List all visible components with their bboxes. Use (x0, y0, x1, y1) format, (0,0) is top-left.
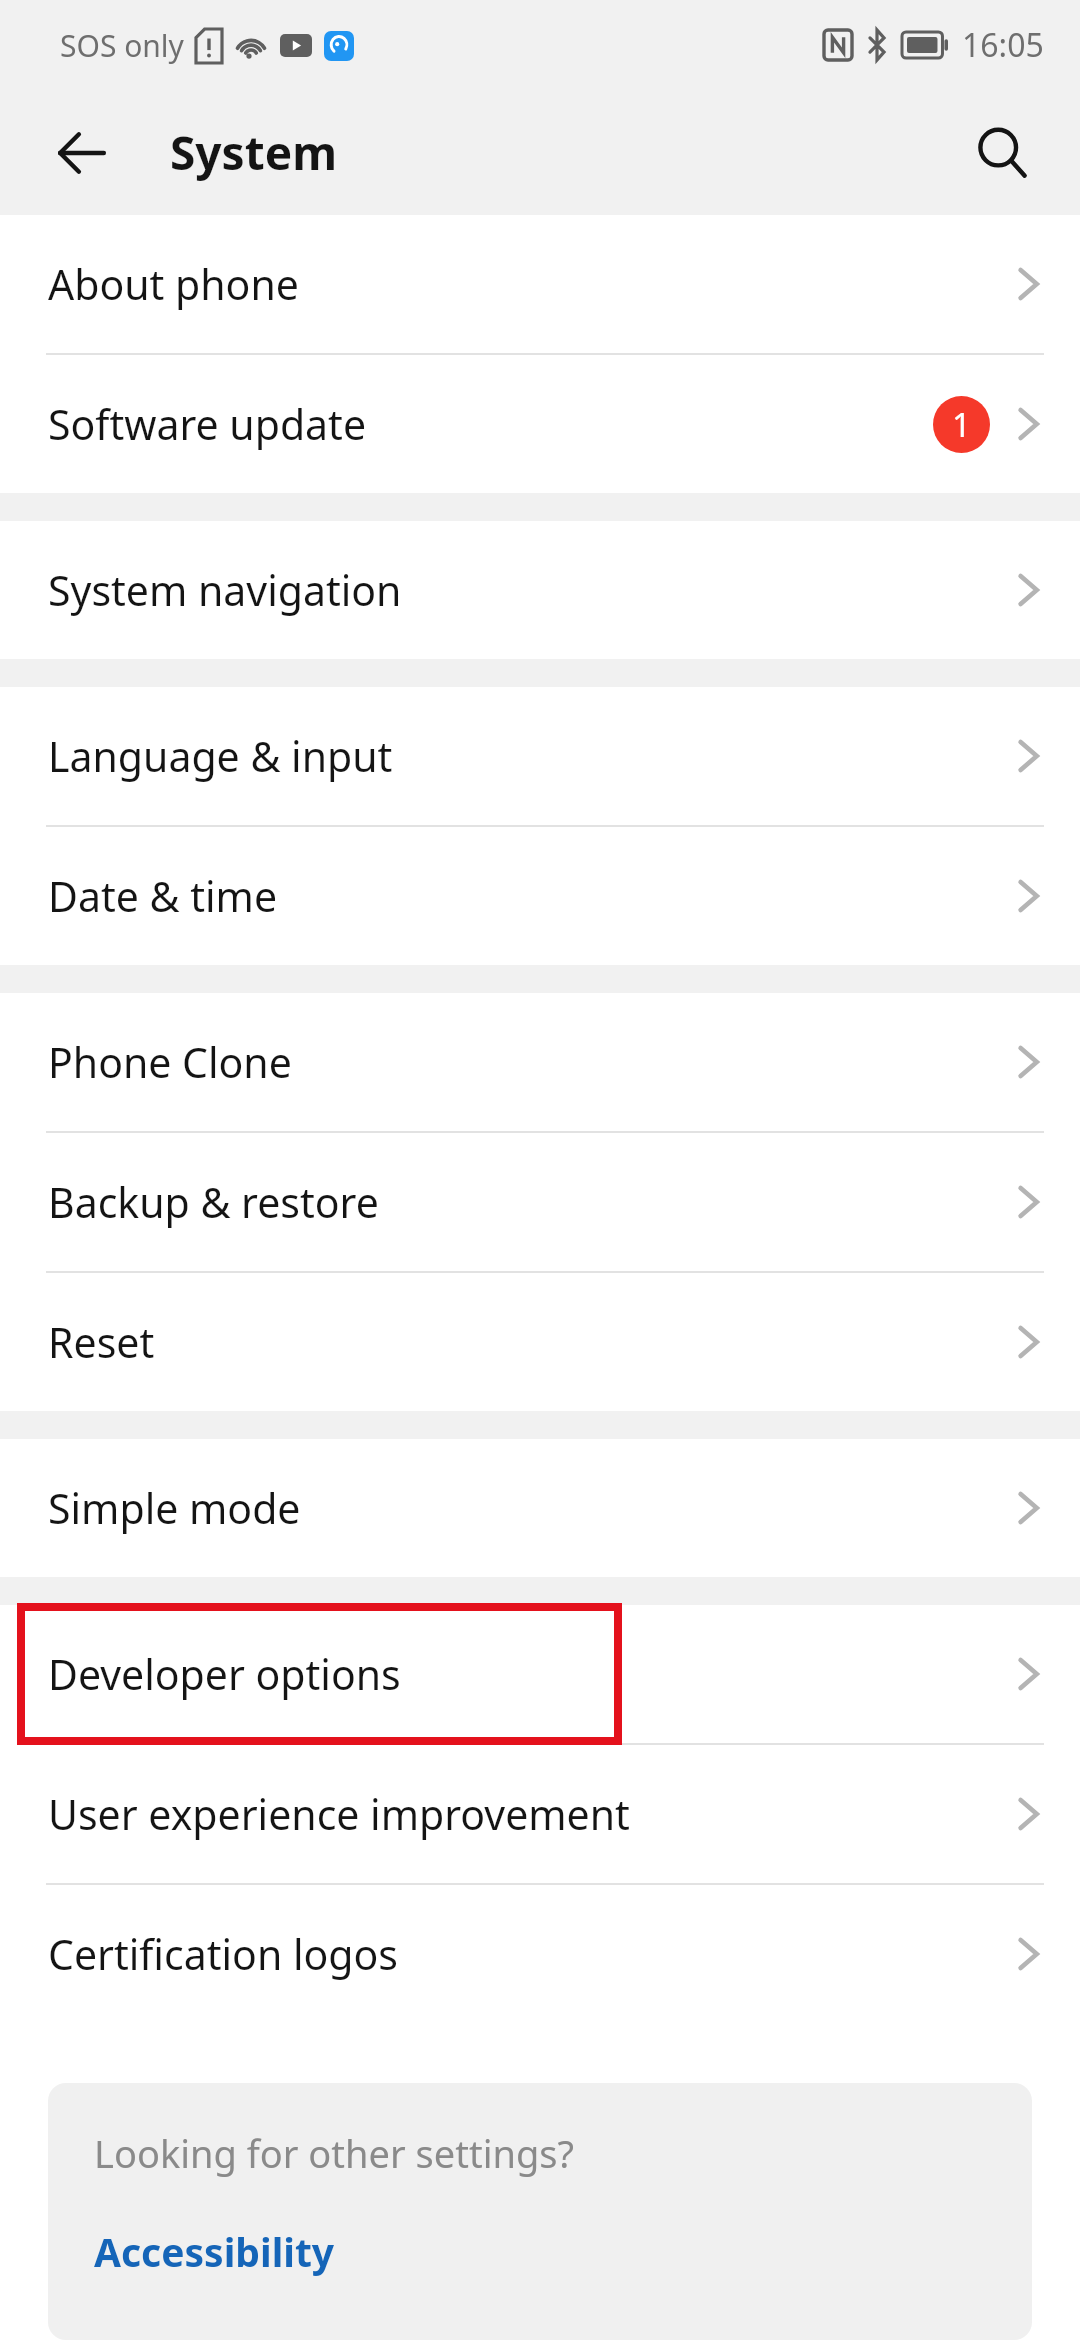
button[interactable]: Software update (0, 355, 1080, 493)
button[interactable]: Reset (0, 1273, 1080, 1411)
staticText: 16:05 (962, 23, 1044, 67)
staticText: About phone (48, 256, 1014, 312)
button[interactable]: User experience improvement (0, 1745, 1080, 1883)
button[interactable]: Language & input (0, 687, 1080, 825)
staticText: System navigation (48, 562, 1014, 618)
button[interactable]: Accessibility (48, 2221, 1032, 2282)
button[interactable]: Back (36, 107, 128, 199)
staticText: Backup & restore (48, 1174, 1014, 1230)
staticText: Software update (48, 396, 933, 452)
staticText: User experience improvement (48, 1786, 1014, 1842)
staticText: Developer options (48, 1646, 1014, 1702)
button[interactable]: Backup & restore (0, 1133, 1080, 1271)
staticText: Looking for other settings? (94, 2127, 574, 2179)
button[interactable]: Date & time (0, 827, 1080, 965)
staticText: Accessibility (94, 2225, 335, 2278)
staticText: Date & time (48, 868, 1014, 924)
staticText: Language & input (48, 728, 1014, 784)
staticText: Certification logos (48, 1926, 1014, 1982)
button[interactable]: System navigation (0, 521, 1080, 659)
staticText: System (170, 121, 337, 184)
button[interactable]: Simple mode (0, 1439, 1080, 1577)
staticText: Phone Clone (48, 1034, 1014, 1090)
button[interactable]: Search (954, 105, 1050, 201)
button[interactable]: Phone Clone (0, 993, 1080, 1131)
staticText: 1 (952, 402, 971, 447)
staticText: SOS only (60, 25, 184, 66)
button[interactable]: Certification logos (0, 1885, 1080, 2023)
staticText: Simple mode (48, 1480, 1014, 1536)
button[interactable]: Developer options (0, 1605, 1080, 1743)
button[interactable]: About phone (0, 215, 1080, 353)
staticText: Reset (48, 1314, 1014, 1370)
